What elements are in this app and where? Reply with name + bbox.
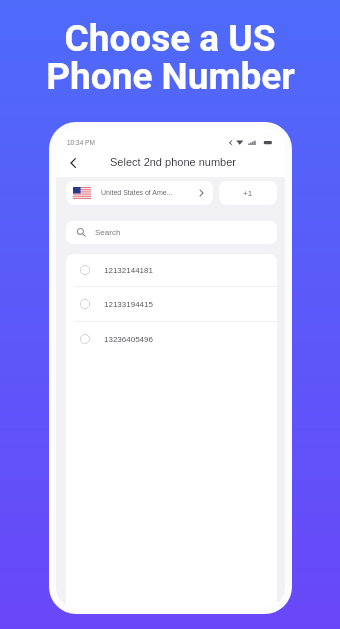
staticText: Choose a US (64, 17, 276, 60)
staticText: 12132144181 (104, 266, 153, 275)
staticText: 13236405496 (104, 335, 153, 344)
button[interactable]: 12132144181 (66, 254, 277, 286)
staticText: +1 (243, 189, 253, 198)
button[interactable]: +1 (219, 181, 277, 205)
staticText: 10:34 PM (67, 139, 95, 146)
button[interactable]: Back (65, 155, 80, 170)
staticText: Phone Number (46, 55, 295, 98)
button[interactable]: 13236405496 (66, 322, 277, 356)
staticText: Search (95, 228, 121, 237)
button[interactable]: Search (66, 221, 277, 244)
button[interactable]: United States of Ame... (66, 181, 213, 205)
staticText: United States of Ame... (101, 189, 173, 197)
button[interactable]: 12133194415 (66, 287, 277, 321)
staticText: Select 2nd phone number (110, 156, 236, 168)
staticText: 12133194415 (104, 300, 153, 309)
